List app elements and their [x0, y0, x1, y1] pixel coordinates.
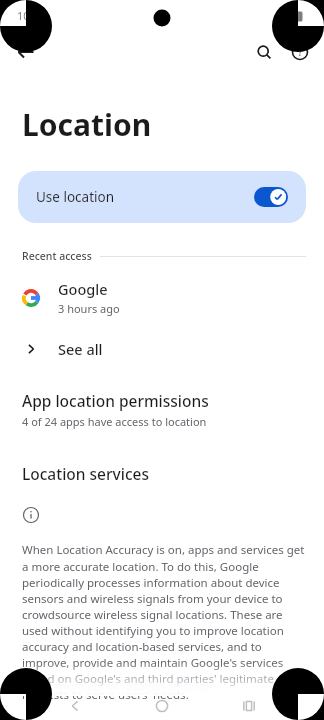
button[interactable]: Back: [8, 34, 44, 70]
button[interactable]: Back: [61, 692, 89, 720]
staticText: App location permissions: [22, 390, 209, 411]
staticText: Use location: [36, 188, 115, 206]
button[interactable]: Search: [246, 34, 282, 70]
button[interactable]: Home: [148, 692, 176, 720]
staticText: When Location Accuracy is on, apps and s…: [22, 542, 306, 702]
staticText: Location: [22, 104, 152, 145]
button[interactable]: Location services: [0, 461, 149, 486]
staticText: Google: [58, 279, 108, 299]
staticText: 4 of 24 apps have access to location: [22, 414, 207, 429]
button[interactable]: Learn more about location settings: [0, 678, 212, 694]
staticText: See all: [58, 339, 103, 359]
staticText: ?: [298, 45, 303, 59]
button[interactable]: Information: [20, 504, 42, 526]
staticText: 10:00: [17, 8, 46, 23]
button[interactable]: Use location: [18, 171, 306, 223]
staticText: 3 hours ago: [58, 301, 120, 316]
button[interactable]: Recent apps: [235, 692, 263, 720]
button[interactable]: Google: [0, 273, 324, 322]
staticText: Apps with the Nearby devices permission …: [22, 716, 306, 720]
button[interactable]: See all: [0, 328, 324, 370]
staticText: Recent access: [22, 249, 92, 263]
button[interactable]: Help: [282, 34, 318, 70]
button[interactable]: App location permissions: [0, 384, 324, 435]
